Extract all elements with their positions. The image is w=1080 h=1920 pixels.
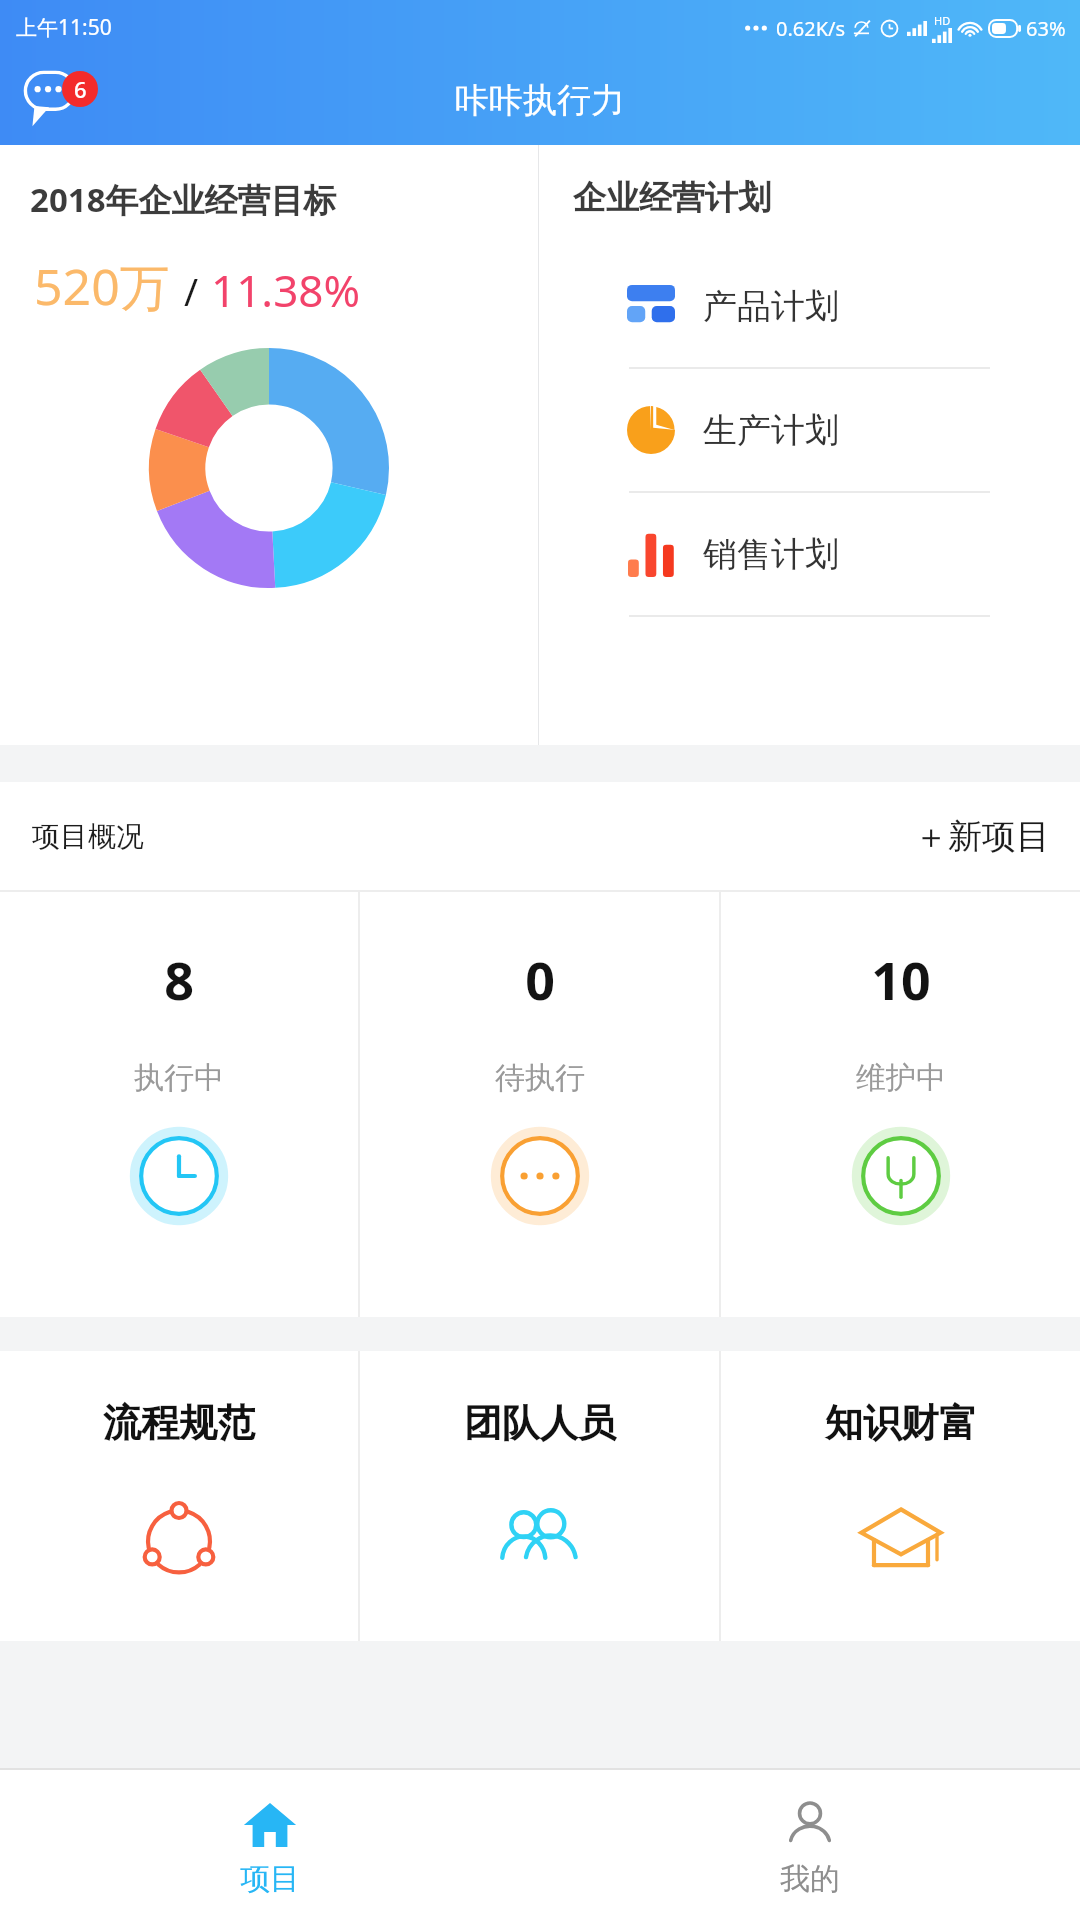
- staticText: 流程规范: [103, 1399, 255, 1447]
- staticText: 执行中: [134, 1059, 224, 1097]
- staticText: 项目概况: [32, 819, 144, 854]
- button[interactable]: 8: [0, 892, 358, 1317]
- button[interactable]: 项目: [0, 1770, 540, 1920]
- button[interactable]: 0: [360, 892, 719, 1317]
- staticText: 2018年企业经营目标: [30, 177, 337, 222]
- button[interactable]: 我的: [540, 1770, 1080, 1920]
- button[interactable]: 团队人员: [360, 1351, 719, 1641]
- staticText: 520万: [34, 252, 170, 320]
- staticText: 63%: [1026, 15, 1066, 42]
- staticText: 项目: [240, 1860, 300, 1898]
- staticText: 10: [871, 944, 931, 1015]
- staticText: 团队人员: [464, 1399, 616, 1447]
- staticText: HD: [934, 13, 951, 28]
- button[interactable]: 销售计划: [539, 493, 1080, 615]
- staticText: 产品计划: [703, 285, 839, 328]
- staticText: 6: [74, 74, 87, 104]
- button[interactable]: 流程规范: [0, 1351, 358, 1641]
- button[interactable]: 2018年企业经营目标: [0, 145, 538, 745]
- staticText: ＋新项目: [914, 815, 1050, 858]
- button[interactable]: 产品计划: [539, 245, 1080, 367]
- button[interactable]: 知识财富: [721, 1351, 1080, 1641]
- staticText: 知识财富: [825, 1399, 977, 1447]
- staticText: 维护中: [856, 1059, 946, 1097]
- staticText: 0: [525, 944, 555, 1015]
- button[interactable]: ＋新项目: [884, 797, 1080, 876]
- staticText: 待执行: [495, 1059, 585, 1097]
- button[interactable]: 生产计划: [539, 369, 1080, 491]
- staticText: /: [184, 265, 199, 317]
- staticText: 咔咔执行力: [455, 79, 625, 122]
- staticText: 11.38%: [211, 260, 361, 320]
- staticText: 我的: [780, 1860, 840, 1898]
- button[interactable]: Messages: [22, 69, 100, 131]
- button[interactable]: 10: [721, 892, 1080, 1317]
- staticText: 销售计划: [703, 533, 839, 576]
- staticText: 上午11:50: [16, 13, 112, 42]
- staticText: 生产计划: [703, 409, 839, 452]
- staticText: 企业经营计划: [573, 177, 771, 219]
- staticText: 0.62K/s: [776, 15, 846, 42]
- staticText: 8: [164, 944, 194, 1015]
